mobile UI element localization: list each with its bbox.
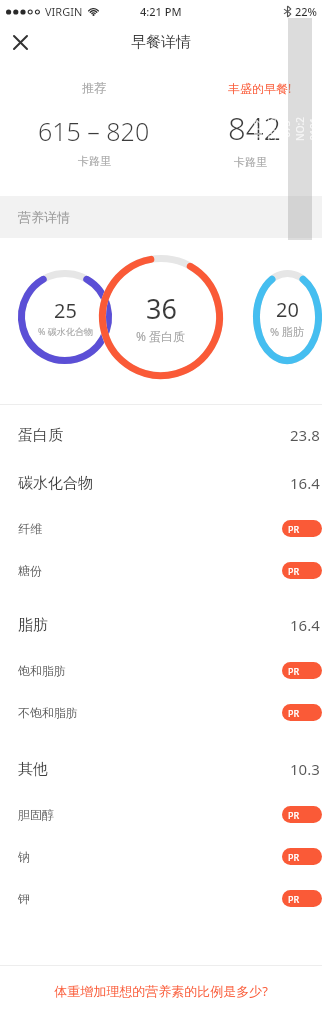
- button[interactable]: 糖份: [0, 549, 322, 591]
- staticText: 推荐: [82, 80, 106, 95]
- staticText: 16.4: [290, 615, 320, 635]
- staticText: 25: [54, 297, 77, 324]
- staticText: 23.8: [290, 425, 320, 445]
- staticText: 丰盛的早餐!: [228, 80, 292, 96]
- staticText: 不饱和脂肪: [18, 705, 78, 720]
- button[interactable]: 纤维: [0, 507, 322, 549]
- staticText: 脂肪: [18, 616, 48, 635]
- staticText: 卡路里: [234, 155, 267, 169]
- staticText: % 脂肪: [270, 324, 305, 339]
- staticText: 纤维: [18, 521, 42, 536]
- button[interactable]: 钠: [0, 835, 322, 877]
- staticText: 早餐详情: [131, 33, 191, 52]
- staticText: % 蛋白质: [136, 328, 186, 344]
- staticText: PR: [288, 565, 300, 577]
- staticText: 卡路里: [78, 154, 111, 168]
- staticText: PR: [288, 707, 300, 719]
- button[interactable]: 钾: [0, 877, 322, 919]
- staticText: 饱和脂肪: [18, 663, 66, 678]
- button[interactable]: Close: [0, 22, 40, 62]
- button[interactable]: 碳水化合物: [0, 459, 322, 507]
- staticText: 10.3: [290, 759, 320, 779]
- staticText: 22%: [295, 4, 317, 19]
- staticText: 36: [146, 290, 177, 327]
- button[interactable]: 其他: [0, 745, 322, 793]
- staticText: 钠: [18, 849, 30, 864]
- staticText: % 碳水化合物: [38, 325, 93, 337]
- staticText: 钾: [18, 891, 30, 906]
- staticText: 其他: [18, 760, 48, 779]
- staticText: 体重增加理想的营养素的比例是多少?: [0, 982, 322, 1000]
- staticText: 碳水化合物: [18, 474, 93, 493]
- staticText: PR: [288, 893, 300, 905]
- staticText: PR: [288, 665, 300, 677]
- staticText: 蛋白质: [18, 426, 63, 445]
- staticText: 16.4: [290, 473, 320, 493]
- button[interactable]: 胆固醇: [0, 793, 322, 835]
- staticText: 糖份: [18, 563, 42, 578]
- staticText: 胆固醇: [18, 807, 54, 822]
- staticText: 842: [228, 107, 282, 149]
- staticText: VIRGIN: [45, 4, 83, 19]
- staticText: PR: [288, 851, 300, 863]
- staticText: PR: [288, 523, 300, 535]
- button[interactable]: 饱和脂肪: [0, 649, 322, 691]
- staticText: 营养详情: [18, 209, 70, 225]
- button[interactable]: 不饱和脂肪: [0, 691, 322, 733]
- button[interactable]: 体重增加理想的营养素的比例是多少?: [0, 966, 322, 1024]
- staticText: 20: [276, 296, 299, 323]
- button[interactable]: 蛋白质: [0, 411, 322, 459]
- staticText: 615 – 820: [38, 114, 150, 148]
- staticText: ID:23566073 NO:201911171231: [251, 117, 322, 141]
- staticText: 4:21 PM: [140, 4, 182, 19]
- button[interactable]: 脂肪: [0, 601, 322, 649]
- staticText: PR: [288, 809, 300, 821]
